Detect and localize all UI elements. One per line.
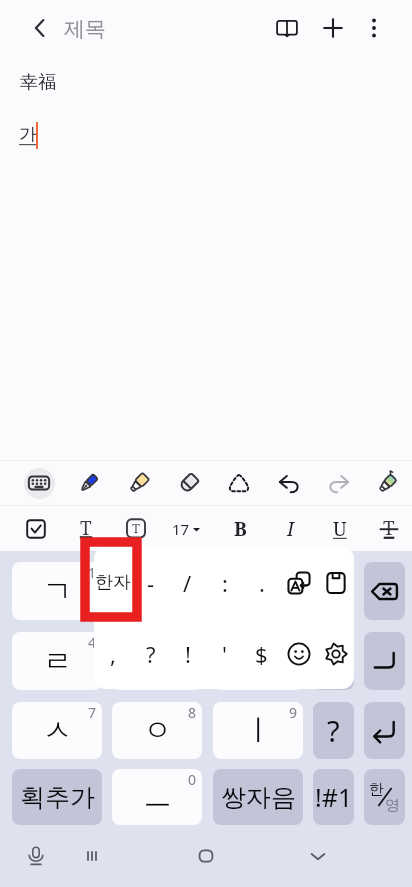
staticText: B [234, 516, 247, 542]
button[interactable]: ㅡ [112, 769, 202, 825]
staticText: ㅂ [244, 643, 273, 680]
button[interactable]: ㄱ [12, 562, 102, 620]
button[interactable]: Pen settings [364, 461, 412, 505]
button[interactable]: 쌍자음 [213, 769, 303, 825]
button[interactable]: Hide keyboard [288, 825, 348, 887]
staticText: !#1 [315, 780, 353, 814]
button[interactable]: Lasso select [214, 461, 264, 505]
button[interactable]: - [132, 547, 169, 618]
button[interactable]: Bold [215, 506, 265, 551]
staticText: ㅁ [143, 643, 172, 680]
button[interactable]: 한자 [94, 547, 132, 618]
staticText: 4 [88, 633, 97, 652]
button[interactable]: ㄹ [12, 632, 102, 690]
staticText: / [183, 568, 192, 598]
staticText: 9 [289, 703, 298, 722]
button[interactable]: · [313, 632, 354, 690]
staticText: ? [146, 639, 156, 669]
button[interactable]: Translate [280, 547, 317, 618]
button[interactable]: Reading mode [263, 4, 311, 52]
button[interactable]: Text style [61, 506, 111, 551]
staticText: 한 [369, 780, 384, 799]
staticText: 8 [188, 703, 197, 722]
button[interactable]: Pen [64, 461, 114, 505]
staticText: 한자 [95, 571, 131, 594]
button[interactable]: ㅁ [112, 632, 202, 690]
button[interactable]: Strikethrough [365, 506, 412, 551]
button[interactable] [364, 702, 405, 759]
button[interactable]: ㅅ [12, 702, 102, 759]
button[interactable]: ? [313, 702, 354, 759]
staticText: ! [185, 639, 191, 669]
button[interactable]: Clipboard [317, 547, 354, 618]
staticText: 1 [88, 563, 97, 582]
button[interactable]: Italic [265, 506, 315, 551]
staticText: T [80, 515, 92, 541]
button[interactable]: Underline [315, 506, 365, 551]
button[interactable]: Font size 17 [161, 506, 211, 551]
staticText: ㅇ [143, 712, 172, 749]
button[interactable]: 획추가 [12, 769, 102, 825]
button[interactable]: $ [243, 618, 280, 689]
button[interactable]: ? [313, 562, 354, 620]
staticText: 제목 [64, 16, 106, 42]
staticText: 17 [172, 519, 190, 539]
button[interactable]: ! [169, 618, 206, 689]
staticText: ㅡ [143, 779, 172, 816]
button[interactable]: Checklist [11, 506, 61, 551]
staticText: T [132, 519, 140, 537]
button[interactable]: Settings [317, 618, 354, 689]
staticText: ? [327, 711, 340, 750]
button[interactable]: Emoji [280, 618, 317, 689]
staticText: ? [327, 572, 340, 611]
button[interactable]: Voice input [6, 825, 66, 887]
staticText: 획추가 [20, 782, 95, 813]
staticText: 3 [289, 563, 298, 582]
staticText: U [333, 516, 347, 542]
button[interactable]: Undo [264, 461, 314, 505]
button[interactable]: ' [206, 618, 243, 689]
button[interactable]: ㄴ [112, 562, 202, 620]
staticText: T [383, 515, 395, 541]
button[interactable]: !#1 [313, 769, 354, 825]
staticText: ㄱ [43, 573, 72, 610]
staticText: ㄷ [244, 573, 273, 610]
button[interactable]: More options [350, 4, 398, 52]
staticText: . [259, 568, 265, 598]
staticText: 쌍자음 [221, 782, 296, 813]
button[interactable]: ㅇ [112, 702, 202, 759]
staticText: ㅣ [244, 712, 273, 749]
staticText: 가 [19, 123, 37, 146]
staticText: - [147, 568, 155, 598]
button[interactable]: Back [16, 4, 64, 52]
button[interactable]: ? [132, 618, 169, 689]
button[interactable] [364, 769, 405, 825]
button[interactable] [364, 632, 405, 690]
button[interactable]: Home [176, 825, 236, 887]
staticText: 5 [188, 633, 197, 652]
staticText: 7 [88, 703, 97, 722]
button[interactable]: : [206, 547, 243, 618]
button[interactable]: ㅣ [213, 702, 303, 759]
button[interactable]: / [169, 547, 206, 618]
staticText: I [287, 516, 294, 542]
button[interactable] [364, 562, 405, 620]
staticText: , [110, 639, 116, 669]
button[interactable]: Recent apps [62, 825, 122, 887]
staticText: $ [255, 639, 268, 669]
button[interactable]: . [243, 547, 280, 618]
button[interactable]: Text box [111, 506, 161, 551]
button[interactable]: Redo [314, 461, 364, 505]
staticText: ' [222, 639, 227, 669]
staticText: · [330, 642, 338, 681]
button[interactable]: Highlighter [114, 461, 164, 505]
button[interactable]: , [94, 618, 132, 689]
staticText: ㄹ [43, 643, 72, 680]
button[interactable]: ㄷ [213, 562, 303, 620]
button[interactable]: Add [309, 4, 357, 52]
staticText: 6 [289, 633, 298, 652]
button[interactable]: Eraser [164, 461, 214, 505]
button[interactable]: Keyboard [14, 461, 64, 505]
button[interactable]: ㅂ [213, 632, 303, 690]
staticText: ㄴ [143, 573, 172, 610]
